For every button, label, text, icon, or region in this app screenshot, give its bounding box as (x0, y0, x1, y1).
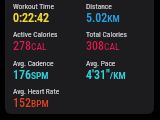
staticText: Total Calories (86, 30, 127, 39)
staticText: Avg. Pace (86, 59, 116, 68)
staticText: 152BPM (13, 96, 49, 110)
staticText: Avg. Cadence (13, 59, 54, 68)
button[interactable]: Avg. Heart Rate (13, 87, 86, 110)
staticText: 278CAL (13, 39, 47, 53)
staticText: 5.02KM (86, 11, 120, 25)
button[interactable]: Total Calories (86, 30, 148, 53)
staticText: 176SPM (13, 68, 49, 82)
staticText: 308CAL (86, 39, 120, 53)
staticText: 0:22:42 (13, 11, 50, 25)
button[interactable]: Distance (86, 2, 148, 25)
button[interactable]: Workout Time (13, 2, 86, 25)
staticText: 4'31"/KM (86, 68, 126, 82)
button[interactable]: Avg. Pace (86, 59, 148, 82)
button[interactable]: Avg. Cadence (13, 59, 86, 82)
staticText: Distance (86, 2, 112, 11)
button[interactable]: Active Calories (13, 30, 86, 53)
staticText: Active Calories (13, 30, 58, 39)
staticText: Workout Time (13, 2, 55, 11)
staticText: Avg. Heart Rate (13, 87, 60, 96)
